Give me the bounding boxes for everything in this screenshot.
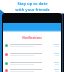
staticText: with your friends [15, 7, 50, 12]
button[interactable] [3, 41, 61, 50]
staticText: Notifications [3, 36, 61, 40]
button[interactable] [3, 50, 61, 59]
staticText: Stay up to date [17, 1, 48, 6]
button[interactable] [3, 59, 61, 68]
button[interactable] [3, 68, 61, 72]
